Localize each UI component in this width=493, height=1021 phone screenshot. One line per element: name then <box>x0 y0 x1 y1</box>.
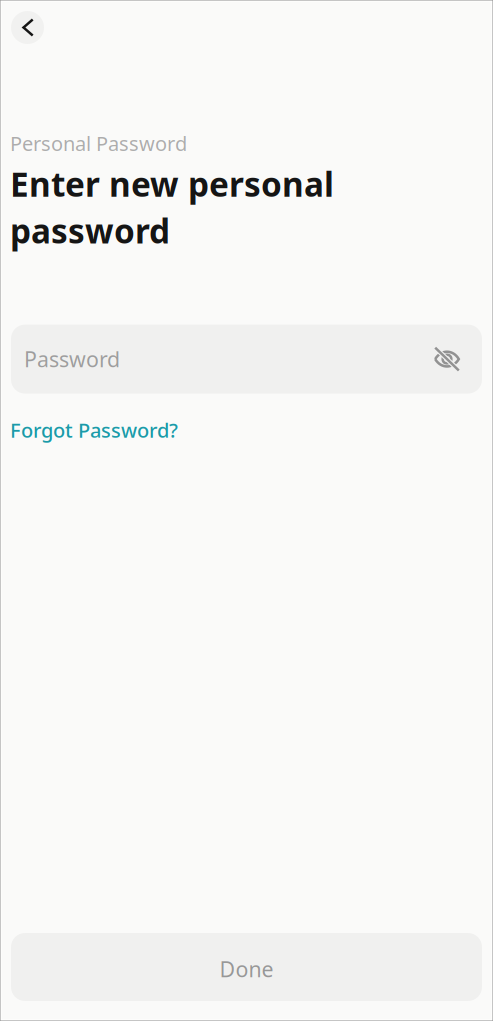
button[interactable]: Back <box>11 11 44 44</box>
button[interactable]: Password <box>11 325 482 394</box>
button[interactable]: Forgot Password? <box>0 394 190 449</box>
staticText: Enter new personal password <box>10 162 334 253</box>
button[interactable]: Done <box>11 933 482 1001</box>
staticText: Forgot Password? <box>10 417 178 443</box>
button[interactable]: Show password <box>425 335 469 383</box>
staticText: Password <box>24 345 120 373</box>
staticText: Personal Password <box>10 130 187 157</box>
staticText: Done <box>219 955 273 983</box>
